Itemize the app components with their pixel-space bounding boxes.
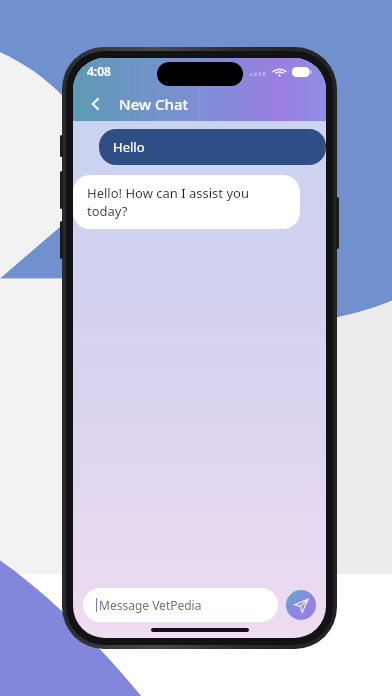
staticText: New Chat — [119, 94, 189, 114]
staticText: Message VetPedia — [99, 597, 202, 613]
button[interactable]: Back — [79, 87, 113, 121]
button[interactable]: Hello! How can I assist you today? — [73, 175, 300, 229]
staticText: Hello — [113, 138, 145, 156]
staticText: 4:08 — [87, 63, 111, 79]
staticText: Hello! How can I assist you today? — [87, 184, 286, 220]
button[interactable]: Send — [286, 590, 316, 620]
button[interactable]: Message VetPedia — [83, 588, 278, 622]
button[interactable]: Hello — [99, 129, 326, 165]
